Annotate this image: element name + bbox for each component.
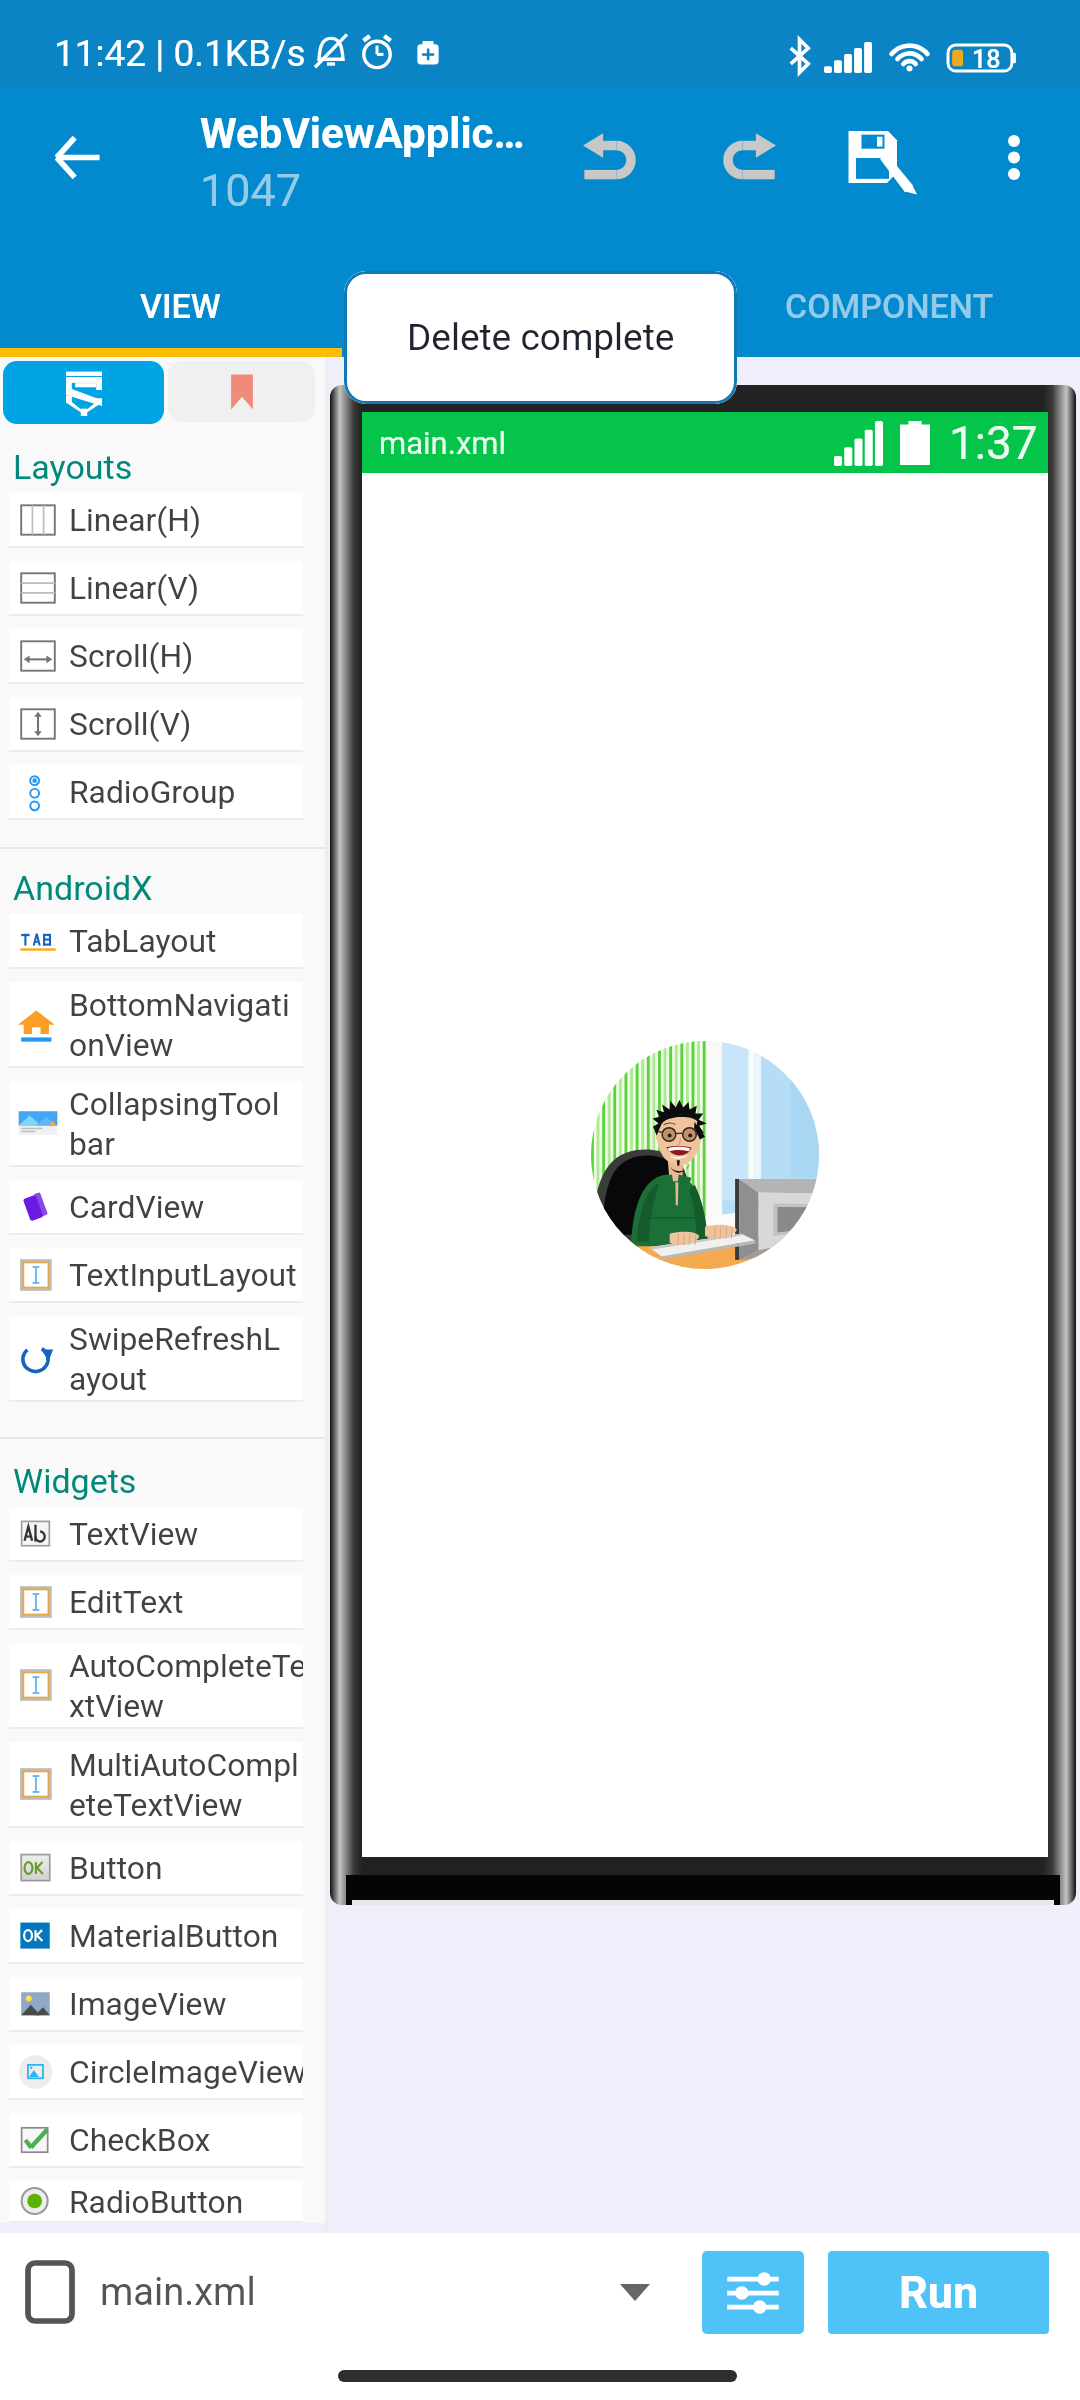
button[interactable]: SwipeRefreshL ayout: [9, 1316, 303, 1400]
staticText: Linear(H): [69, 501, 201, 538]
button[interactable]: RadioGroup: [9, 765, 303, 818]
staticText: TabLayout: [69, 922, 217, 959]
staticText: TextInputLayout: [69, 1256, 297, 1293]
button[interactable]: BottomNavigati onView: [9, 982, 303, 1066]
staticText: main.xml: [379, 425, 506, 461]
staticText: 1047: [200, 164, 302, 217]
button[interactable]: EditText: [9, 1575, 303, 1628]
button[interactable]: Button: [9, 1841, 303, 1894]
button[interactable]: Run: [828, 2251, 1049, 2334]
staticText: 11:42 | 0.1KB/s: [54, 32, 306, 75]
staticText: COMPONENT: [785, 286, 994, 326]
button[interactable]: Redo: [695, 92, 795, 222]
button[interactable]: More options: [966, 92, 1062, 222]
staticText: 18: [972, 45, 1001, 71]
button[interactable]: MaterialButton: [9, 1909, 303, 1962]
button[interactable]: COMPONENT: [698, 263, 1080, 348]
staticText: BottomNavigati onView: [69, 986, 290, 1063]
button[interactable]: Scroll(V): [9, 697, 303, 750]
button[interactable]: CardView: [9, 1180, 303, 1233]
button[interactable]: VIEW: [0, 263, 360, 348]
button[interactable]: Widgets palette: [3, 361, 164, 424]
button[interactable]: Save: [830, 92, 930, 222]
button[interactable]: AutoCompleteTe xtView: [9, 1643, 303, 1727]
button[interactable]: main.xml: [28, 2246, 702, 2338]
staticText: MultiAutoCompl eteTextView: [69, 1746, 299, 1823]
staticText: WebViewApplic…: [200, 109, 525, 158]
staticText: MaterialButton: [69, 1917, 279, 1954]
staticText: 1:37: [949, 416, 1038, 470]
button[interactable]: ImageView: [9, 1977, 303, 2030]
button[interactable]: MultiAutoCompl eteTextView: [9, 1742, 303, 1826]
staticText: CircleImageView: [69, 2053, 303, 2090]
staticText: CheckBox: [69, 2121, 211, 2158]
staticText: TextView: [69, 1515, 199, 1552]
button[interactable]: Undo: [563, 92, 663, 222]
button[interactable]: CollapsingTool bar: [9, 1081, 303, 1165]
staticText: Scroll(H): [69, 637, 194, 674]
staticText: Button: [69, 1849, 163, 1886]
staticText: AndroidX: [13, 868, 153, 908]
staticText: Delete complete: [407, 316, 675, 359]
button[interactable]: TextInputLayout: [9, 1248, 303, 1301]
button[interactable]: TabLayout: [9, 914, 303, 967]
staticText: Layouts: [13, 447, 133, 487]
button[interactable]: RadioButton: [9, 2181, 303, 2221]
button[interactable]: Favorites: [168, 361, 315, 422]
staticText: CardView: [69, 1188, 205, 1225]
staticText: Scroll(V): [69, 705, 192, 742]
staticText: RadioGroup: [69, 773, 236, 810]
button[interactable]: Back: [4, 99, 150, 229]
staticText: AutoCompleteTe xtView: [69, 1647, 303, 1724]
button[interactable]: Linear(H): [9, 493, 303, 546]
button[interactable]: CircleImageView: [9, 2045, 303, 2098]
staticText: ImageView: [69, 1985, 227, 2022]
staticText: Run: [899, 2266, 979, 2319]
staticText: SwipeRefreshL ayout: [69, 1320, 281, 1397]
button[interactable]: Scroll(H): [9, 629, 303, 682]
staticText: Linear(V): [69, 569, 200, 606]
button[interactable]: CheckBox: [9, 2113, 303, 2166]
staticText: CollapsingTool bar: [69, 1085, 280, 1162]
staticText: VIEW: [140, 286, 221, 326]
button[interactable]: Linear(V): [9, 561, 303, 614]
staticText: main.xml: [100, 2270, 256, 2315]
staticText: RadioButton: [69, 2183, 244, 2220]
button[interactable]: TextView: [9, 1507, 303, 1560]
staticText: EditText: [69, 1583, 184, 1620]
staticText: Widgets: [13, 1461, 137, 1501]
button[interactable]: Project settings: [702, 2251, 804, 2334]
